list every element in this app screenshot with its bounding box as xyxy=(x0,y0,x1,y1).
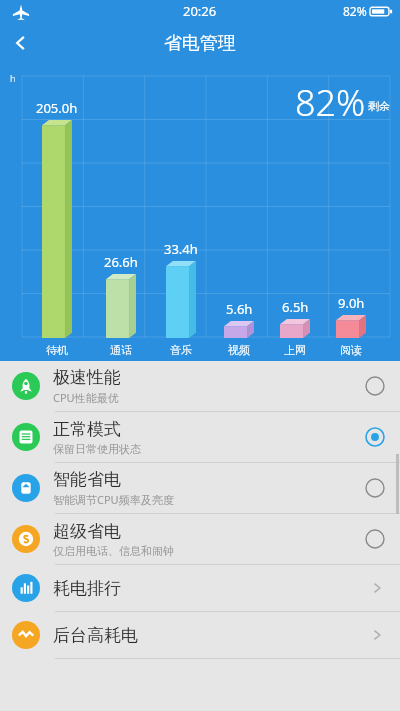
staticText: 视频 xyxy=(228,343,250,357)
staticText: 33.4h xyxy=(164,240,198,258)
staticText: 后台高耗电 xyxy=(53,625,370,646)
staticText: 剩余 xyxy=(368,99,390,113)
staticText: 超级省电 xyxy=(53,521,121,542)
staticText: 正常模式 xyxy=(53,419,121,440)
staticText: 音乐 xyxy=(170,343,192,357)
button[interactable]: 后台高耗电 xyxy=(0,612,400,658)
staticText: 智能省电 xyxy=(53,469,121,490)
staticText: 82% xyxy=(343,3,367,19)
staticText: 20:26 xyxy=(183,2,217,20)
staticText: 205.0h xyxy=(36,99,78,117)
button[interactable]: Back xyxy=(0,22,42,64)
staticText: 5.6h xyxy=(226,300,253,318)
staticText: CPU性能最优 xyxy=(53,390,119,405)
staticText: 智能调节CPU频率及亮度 xyxy=(53,492,174,507)
staticText: 极速性能 xyxy=(53,367,121,388)
staticText: 保留日常使用状态 xyxy=(53,442,141,456)
staticText: 6.5h xyxy=(282,298,309,316)
staticText: 上网 xyxy=(284,343,306,357)
button[interactable]: 极速性能 xyxy=(0,361,400,411)
staticText: 仅启用电话、信息和闹钟 xyxy=(53,544,174,558)
staticText: 26.6h xyxy=(104,253,138,271)
staticText: 省电管理 xyxy=(164,32,236,55)
staticText: 阅读 xyxy=(340,343,362,357)
button[interactable]: 正常模式 xyxy=(0,412,400,462)
button[interactable]: 超级省电 xyxy=(0,514,400,564)
staticText: 9.0h xyxy=(338,294,365,312)
button[interactable]: 耗电排行 xyxy=(0,565,400,611)
button[interactable]: 智能省电 xyxy=(0,463,400,513)
staticText: 通话 xyxy=(110,343,132,357)
staticText: 待机 xyxy=(46,343,68,357)
staticText: h xyxy=(10,72,16,84)
staticText: 耗电排行 xyxy=(53,578,370,599)
staticText: 82% xyxy=(295,78,366,127)
